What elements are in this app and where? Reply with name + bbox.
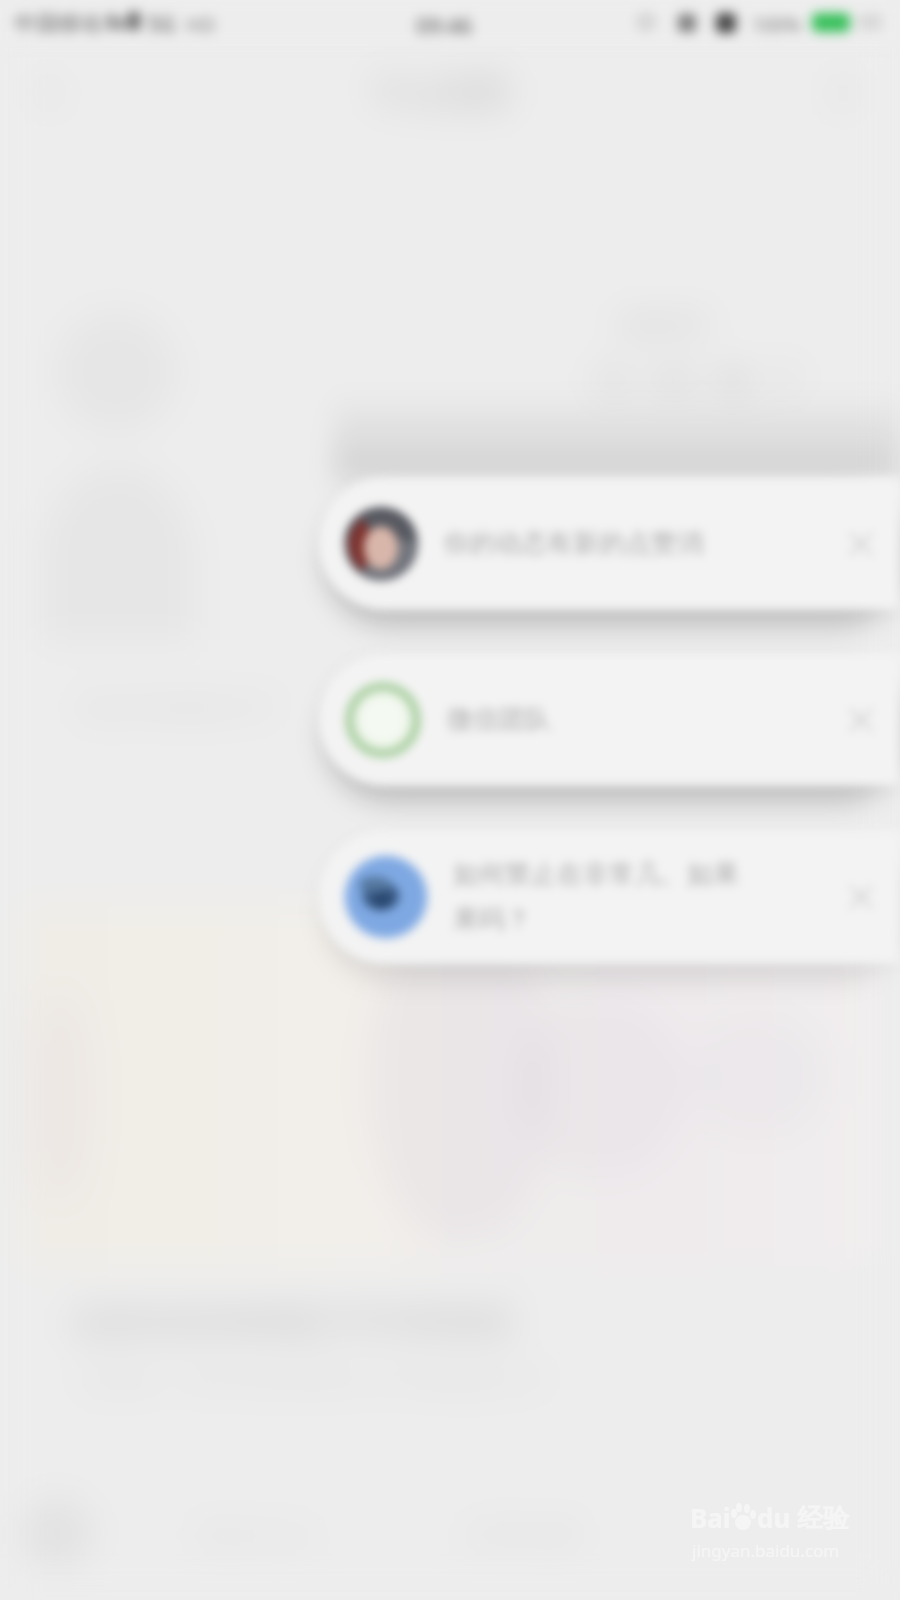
button[interactable]: Dismiss <box>835 871 887 923</box>
button[interactable]: 你的动态有新的点赞消 <box>318 477 900 610</box>
staticText: 果吗？ <box>453 903 531 936</box>
staticText: Bai <box>690 1500 731 1535</box>
staticText: HD <box>186 11 216 38</box>
staticText: 微信团队 <box>447 703 551 736</box>
staticText: 经验 <box>797 1502 849 1535</box>
staticText: 09:46 <box>416 10 473 40</box>
staticText: 你的动态有新的点赞消 <box>443 527 703 560</box>
staticText: 100% <box>752 12 801 38</box>
staticText: 如何禁止在非常几、如果 <box>453 858 739 891</box>
button[interactable]: Dismiss <box>835 694 887 746</box>
button[interactable]: Dismiss <box>835 518 887 570</box>
staticText: 5G <box>148 10 176 39</box>
staticText: 中国移动 <box>14 10 102 38</box>
button[interactable]: 微信团队 <box>318 653 900 786</box>
button[interactable]: 如何禁止在非常几、如果 <box>318 830 900 964</box>
staticText: du <box>757 1500 791 1535</box>
